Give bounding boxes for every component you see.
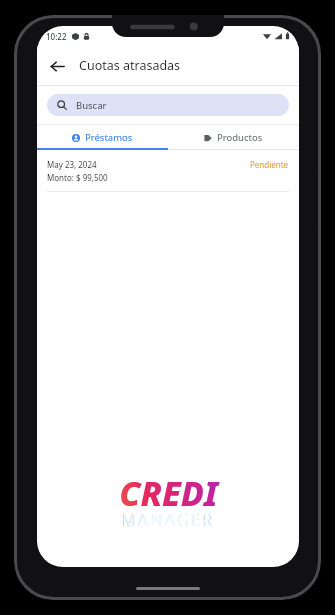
button[interactable]: Productos [168,125,299,150]
staticText: May 23, 2024 [47,159,97,170]
staticText: Monto: $ 99,500 [47,172,108,183]
staticText: 10:22 [46,31,67,42]
button[interactable]: Buscar [47,94,289,116]
staticText: CREDI [119,470,218,516]
staticText: Productos [217,131,263,144]
staticText: Buscar [76,99,107,112]
staticText: MANAGER [102,509,234,530]
button[interactable]: Back [42,51,72,81]
staticText: Pendiente [250,159,289,170]
button[interactable]: Préstamos [37,125,168,150]
staticText: MANAGER [102,509,234,531]
staticText: Cuotas atrasadas [79,57,181,74]
button[interactable]: May 23, 2024 [37,150,299,191]
staticText: Préstamos [85,131,133,144]
